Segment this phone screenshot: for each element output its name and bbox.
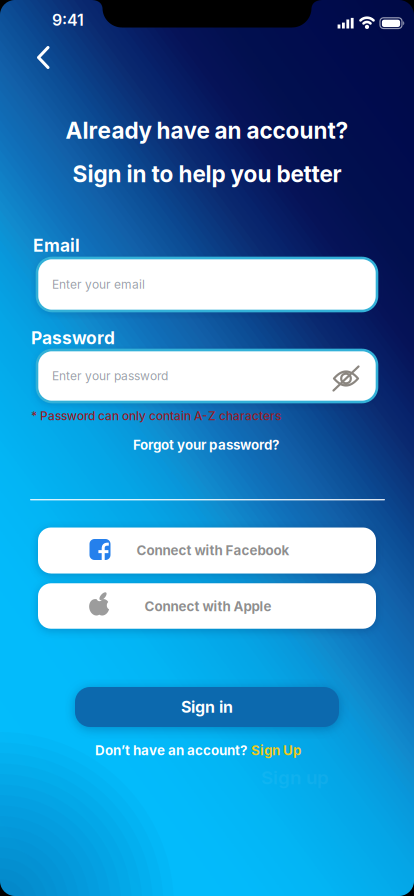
staticText: Enter your email (52, 277, 145, 292)
button[interactable]: Email, text field (37, 258, 377, 311)
button[interactable]: Sign Up (247, 739, 305, 762)
button[interactable]: Connect with Apple (38, 583, 376, 629)
staticText: Email (33, 235, 80, 256)
button[interactable]: Back (21, 35, 65, 79)
staticText: Already have an account? (65, 117, 348, 144)
button[interactable]: Password, text field (37, 350, 377, 402)
button[interactable]: Sign in (75, 687, 339, 727)
staticText: Sign up (261, 766, 329, 788)
staticText: Password (31, 328, 115, 348)
staticText: * Password can only contain A-Z characte… (31, 409, 281, 423)
button[interactable]: Forgot your password? (123, 431, 289, 459)
staticText: Connect with Apple (144, 599, 271, 614)
staticText: Sign in to help you better (72, 161, 341, 187)
staticText: Enter your password (52, 369, 168, 383)
button[interactable]: Show password (324, 356, 368, 400)
staticText: Sign in (181, 698, 233, 716)
staticText: Don’t have an account? (95, 743, 247, 758)
staticText: Forgot your password? (133, 437, 279, 453)
staticText: Connect with Facebook (136, 543, 289, 558)
staticText: Sign Up (251, 743, 301, 758)
staticText: 9:41 (52, 11, 84, 29)
button[interactable]: Connect with Facebook (38, 527, 376, 573)
